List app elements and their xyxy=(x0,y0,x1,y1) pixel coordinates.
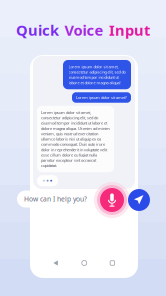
staticText: Lorem ipsum dolor sit amet, consectetur … xyxy=(68,64,125,85)
staticText: How can I help you? xyxy=(24,195,87,203)
staticText: Lorem ipsum dolor sit amet, consectetur … xyxy=(41,110,110,168)
button[interactable]: Send xyxy=(128,189,150,211)
staticText: Lorem ipsum dolor sit amet? xyxy=(76,95,127,100)
staticText: Quick xyxy=(16,20,59,40)
button[interactable]: Voice input xyxy=(94,182,130,218)
staticText: Input xyxy=(109,20,150,40)
staticText: Get Premium xyxy=(89,190,115,195)
staticText: Voice xyxy=(64,20,103,40)
